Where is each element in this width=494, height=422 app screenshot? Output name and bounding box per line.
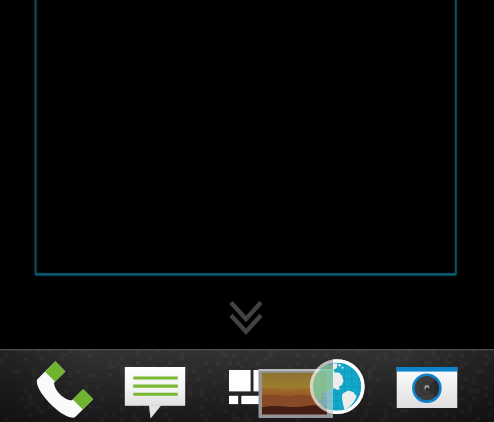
button[interactable]: Dock [0,0,494,422]
